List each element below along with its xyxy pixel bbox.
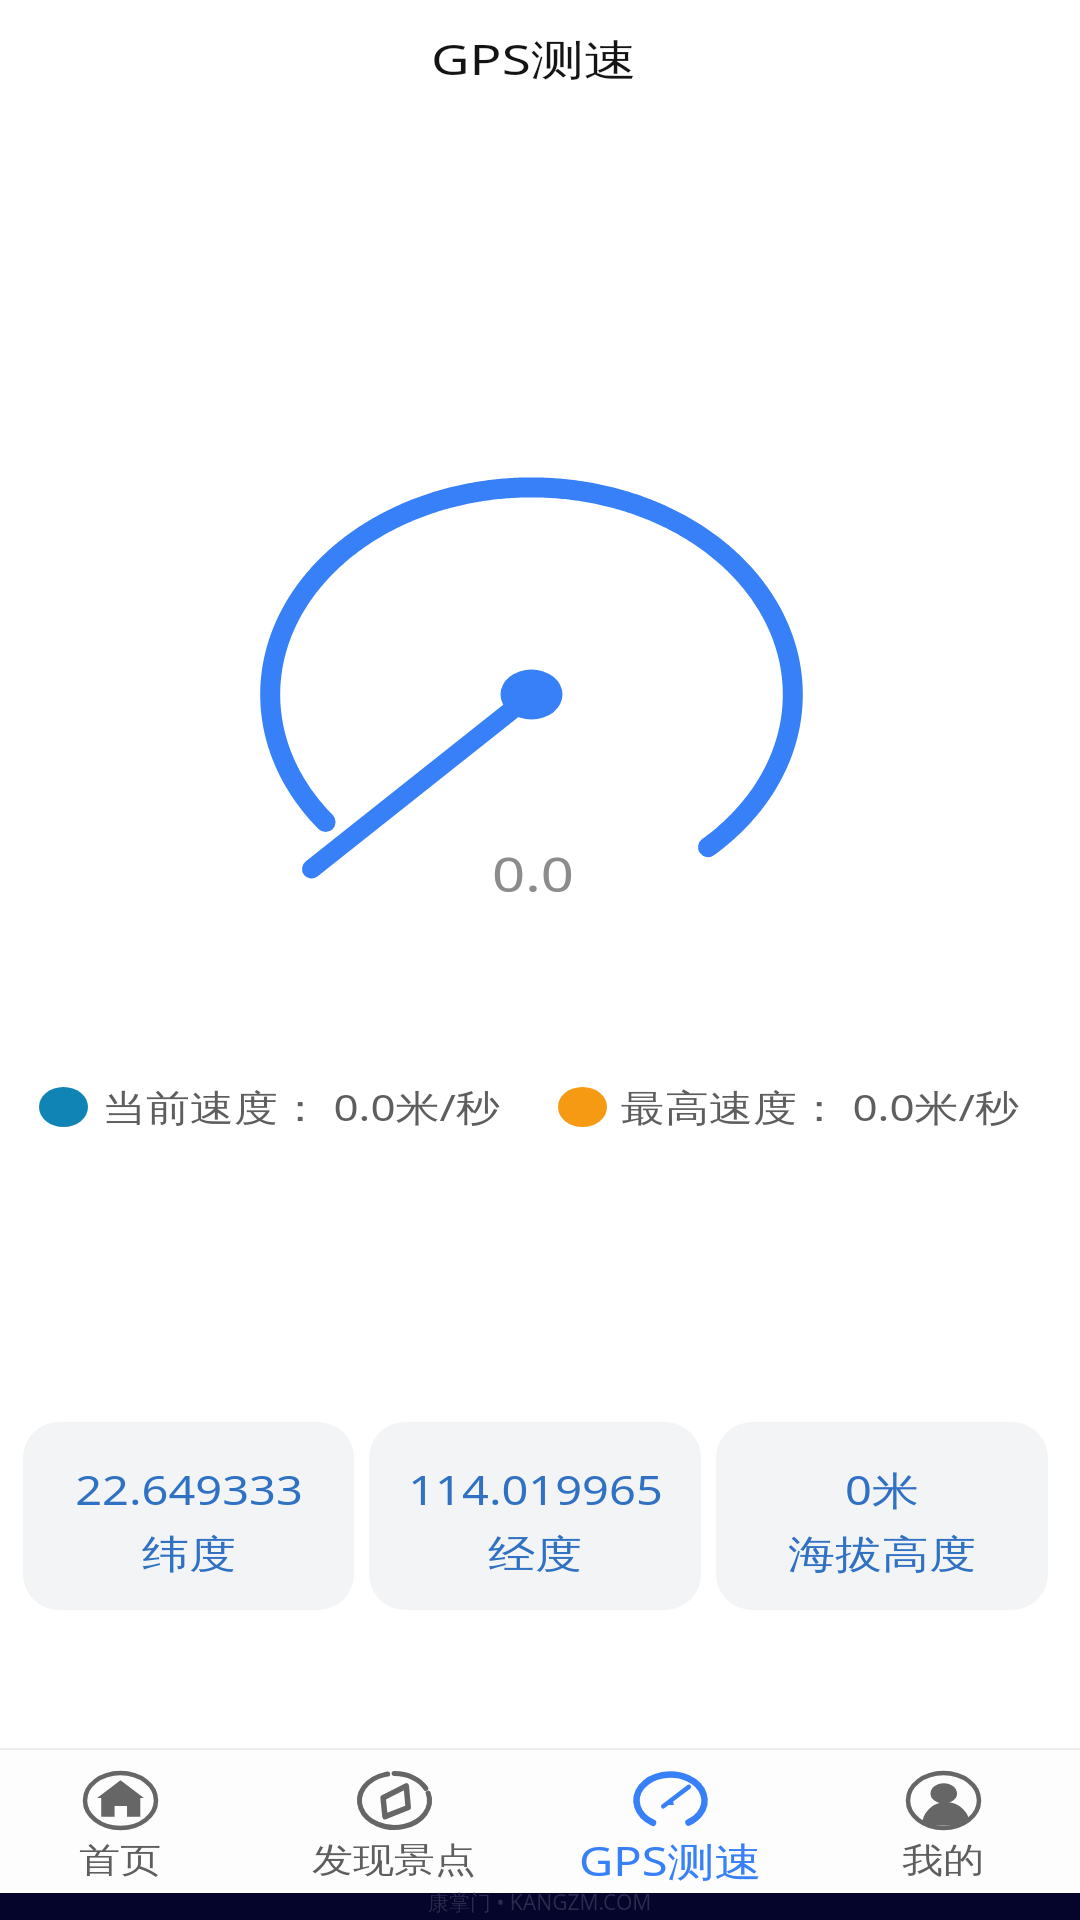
other: 我的 [906,1771,981,1830]
staticText: 康掌门 • KANGZM.COM [428,1888,652,1915]
staticText: 114.019965 [408,1463,663,1517]
staticText: 最高速度： 0.0米/秒 [621,1082,1019,1132]
staticText: 0米 [845,1463,919,1517]
other: 发现景点 [357,1771,432,1830]
button[interactable]: 0米 [716,1422,1048,1610]
button[interactable]: 发现景点 [257,1748,531,1893]
staticText: GPS测速 [431,29,637,87]
staticText: 发现景点 [312,1839,476,1883]
other: GPS测速 [633,1771,708,1830]
staticText: GPS测速 [579,1834,762,1882]
staticText: 纬度 [142,1530,236,1579]
button[interactable]: GPS测速 [533,1748,807,1893]
staticText: 首页 [79,1839,161,1883]
staticText: 我的 [902,1839,984,1883]
button[interactable]: 我的 [806,1748,1080,1893]
button[interactable]: 首页 [0,1748,257,1893]
button[interactable]: 22.649333 [23,1422,354,1610]
staticText: 0.0 [492,841,574,906]
staticText: 22.649333 [75,1463,303,1517]
other: 首页 [83,1771,158,1830]
staticText: 海拔高度 [788,1530,976,1579]
staticText: 当前速度： 0.0米/秒 [102,1082,500,1132]
staticText: 经度 [488,1530,582,1579]
button[interactable]: 114.019965 [369,1422,701,1610]
